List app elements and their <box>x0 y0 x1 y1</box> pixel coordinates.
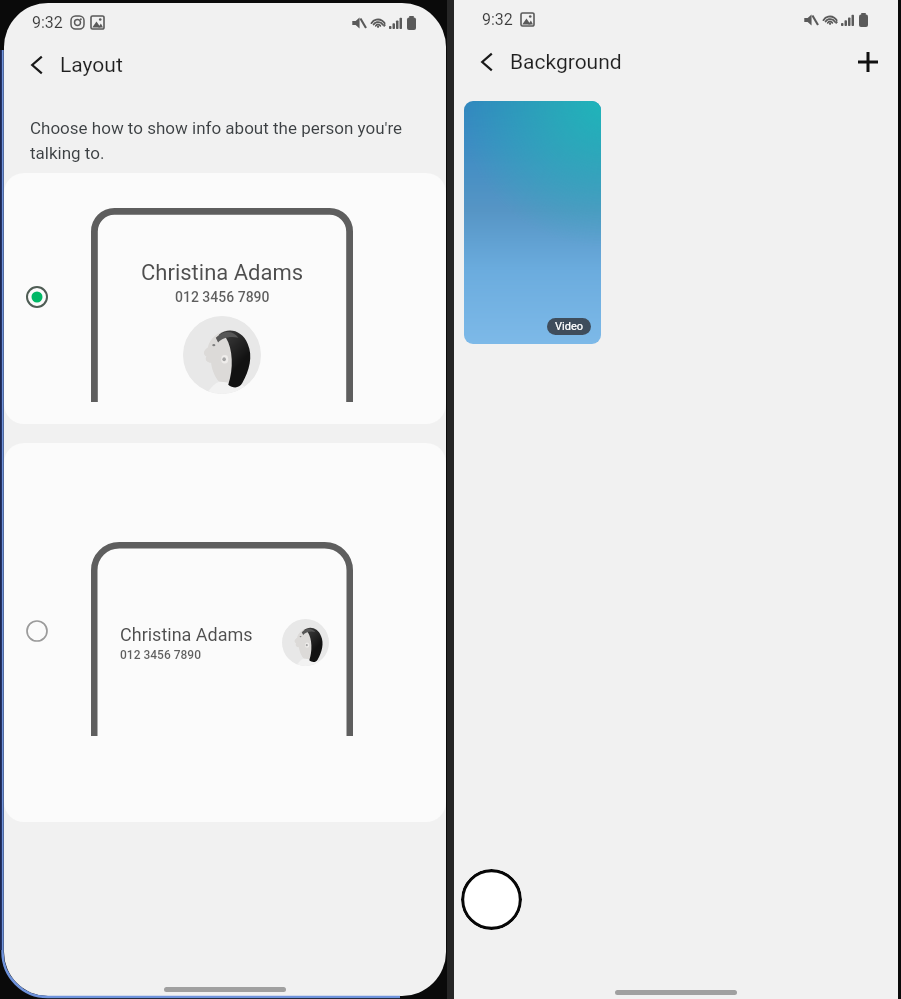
other: Video <box>555 320 583 333</box>
staticText: Video <box>555 320 583 333</box>
button[interactable]: Back <box>18 46 56 84</box>
button[interactable]: Video <box>464 101 601 344</box>
button[interactable]: Christina Adams <box>4 443 446 822</box>
staticText: 9:32 <box>482 10 513 29</box>
staticText: Christina Adams <box>141 260 304 286</box>
staticText: Layout <box>60 53 123 78</box>
button[interactable]: Christina Adams <box>4 173 446 424</box>
button[interactable]: Back <box>468 43 506 81</box>
staticText: 9:32 <box>32 13 63 32</box>
staticText: Christina Adams <box>120 624 253 645</box>
staticText: Background <box>510 50 622 75</box>
staticText: 012 3456 7890 <box>175 289 270 305</box>
button[interactable]: Add colour <box>461 869 522 930</box>
staticText: 012 3456 7890 <box>120 648 201 662</box>
button[interactable]: Add background <box>849 43 887 81</box>
staticText: Choose how to show info about the person… <box>30 118 422 163</box>
